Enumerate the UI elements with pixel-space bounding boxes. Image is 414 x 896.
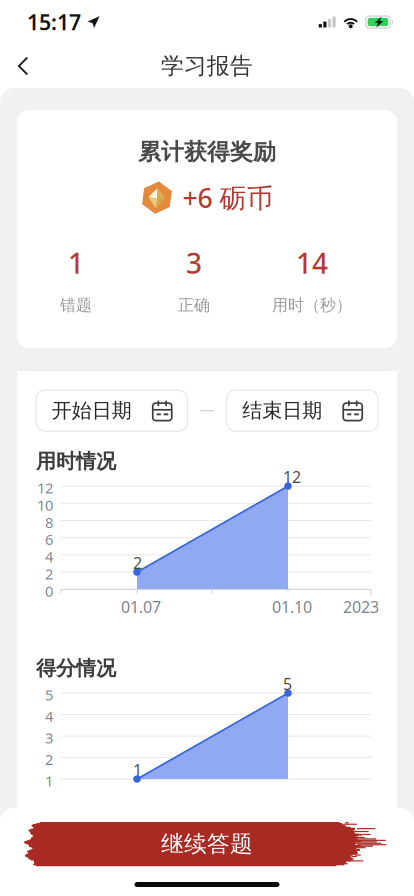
staticText: 8 <box>45 512 53 532</box>
button[interactable]: 结束日期 <box>226 390 378 431</box>
staticText: 累计获得奖励 <box>138 138 276 166</box>
staticText: 6 <box>45 530 53 549</box>
staticText: 3 <box>45 728 53 748</box>
button[interactable]: Back <box>0 44 46 88</box>
staticText: 1 <box>45 771 53 791</box>
staticText: 10 <box>37 495 53 515</box>
staticText: +6 砺币 <box>182 180 273 215</box>
staticText: 14 <box>296 244 328 281</box>
staticText: 5 <box>45 685 53 705</box>
staticText: 错题 <box>60 295 92 315</box>
staticText: 4 <box>45 547 53 566</box>
staticText: 5 <box>283 673 292 694</box>
staticText: 2 <box>45 750 53 769</box>
staticText: 2023 <box>343 596 379 617</box>
staticText: 1 <box>68 244 84 281</box>
staticText: 4 <box>45 707 53 726</box>
staticText: 2 <box>45 564 53 584</box>
staticText: 12 <box>37 478 53 498</box>
staticText: 2 <box>133 552 142 573</box>
staticText: 3 <box>186 244 202 281</box>
button[interactable]: 继续答题 <box>19 822 395 866</box>
staticText: 0 <box>45 581 53 601</box>
staticText: 学习报告 <box>161 52 253 80</box>
staticText: 用时（秒） <box>272 295 352 315</box>
staticText: 1 <box>133 759 142 780</box>
staticText: 01.10 <box>272 596 312 617</box>
staticText: 01.07 <box>121 596 161 617</box>
staticText: 用时情况 <box>36 449 116 474</box>
staticText: 继续答题 <box>161 830 253 858</box>
staticText: 正确 <box>178 295 210 315</box>
button[interactable]: 开始日期 <box>36 390 187 431</box>
staticText: 结束日期 <box>242 398 322 423</box>
staticText: 12 <box>283 466 301 487</box>
staticText: 15:17 <box>27 8 81 36</box>
staticText: 开始日期 <box>52 398 132 423</box>
staticText: 得分情况 <box>36 656 116 681</box>
